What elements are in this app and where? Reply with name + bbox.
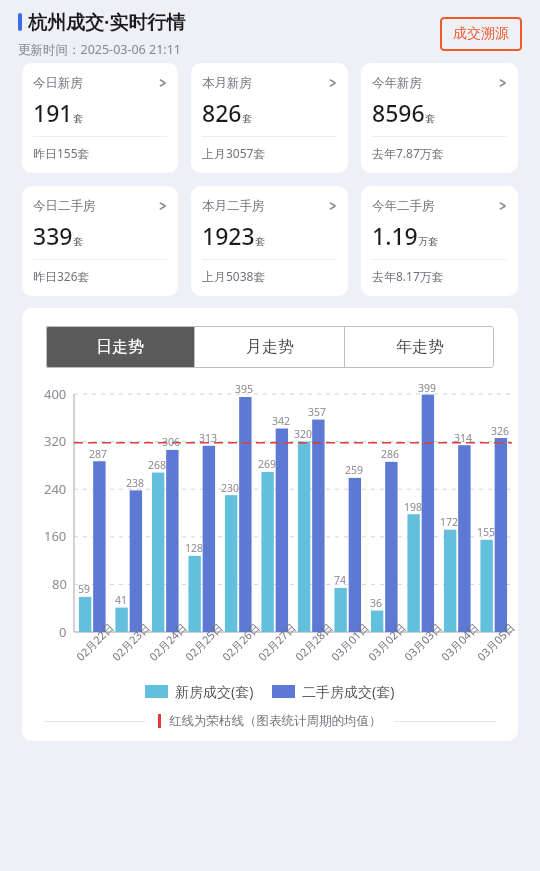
staticText: 41 xyxy=(115,593,128,607)
staticText: 新房成交(套) xyxy=(175,682,254,701)
staticText: 03月05日 xyxy=(474,619,518,664)
staticText: 59 xyxy=(78,582,91,596)
staticText: 269 xyxy=(258,457,277,471)
staticText: 313 xyxy=(199,431,218,445)
staticText: 155 xyxy=(477,525,496,539)
staticText: 259 xyxy=(345,463,364,477)
staticText: 230 xyxy=(221,481,240,495)
staticText: 本月二手房 xyxy=(202,198,265,214)
staticText: 套 xyxy=(73,112,83,125)
staticText: 03月04日 xyxy=(438,619,482,664)
staticText: 198 xyxy=(404,500,423,514)
staticText: 更新时间：2025-03-06 21:11 xyxy=(18,41,181,58)
staticText: 上月5038套 xyxy=(202,268,266,284)
staticText: 357 xyxy=(308,405,327,419)
staticText: 8596 xyxy=(372,97,425,128)
staticText: 上月3057套 xyxy=(202,145,266,161)
staticText: 02月27日 xyxy=(255,619,299,664)
staticText: 320 xyxy=(44,432,67,450)
staticText: 去年7.87万套 xyxy=(372,145,444,161)
staticText: 02月24日 xyxy=(146,619,190,664)
staticText: 399 xyxy=(418,381,437,395)
staticText: 0 xyxy=(59,623,67,641)
staticText: 1.19 xyxy=(372,220,418,251)
staticText: 今年二手房 xyxy=(372,198,435,214)
staticText: 二手房成交(套) xyxy=(302,682,395,701)
button[interactable]: 日走势 xyxy=(46,326,194,368)
button[interactable]: 本月新房 xyxy=(191,63,348,173)
staticText: 月走势 xyxy=(246,337,294,357)
staticText: 128 xyxy=(185,541,204,555)
staticText: 240 xyxy=(44,480,67,498)
staticText: 36 xyxy=(370,596,383,610)
staticText: 400 xyxy=(44,385,67,403)
staticText: 03月03日 xyxy=(401,619,445,664)
staticText: 286 xyxy=(381,447,400,461)
button[interactable]: 年走势 xyxy=(345,326,494,368)
staticText: 80 xyxy=(52,575,67,593)
staticText: 172 xyxy=(440,515,459,529)
button[interactable]: 成交溯源 xyxy=(440,17,522,51)
button[interactable]: 月走势 xyxy=(195,326,344,368)
staticText: 套 xyxy=(255,235,265,248)
staticText: 287 xyxy=(89,447,108,461)
staticText: 日走势 xyxy=(96,337,144,357)
staticText: 02月23日 xyxy=(109,619,153,664)
button[interactable]: 今日二手房 xyxy=(22,186,178,296)
staticText: 杭州成交·实时行情 xyxy=(28,9,186,35)
staticText: 套 xyxy=(73,235,83,248)
staticText: 万套 xyxy=(418,235,438,248)
staticText: 昨日326套 xyxy=(33,268,90,284)
button[interactable]: 今年二手房 xyxy=(361,186,518,296)
button[interactable]: 今年新房 xyxy=(361,63,518,173)
staticText: 03月01日 xyxy=(328,619,372,664)
staticText: 1923 xyxy=(202,220,255,251)
staticText: 74 xyxy=(334,573,347,587)
staticText: 342 xyxy=(272,414,291,428)
staticText: 02月28日 xyxy=(292,619,336,664)
staticText: 红线为荣枯线（图表统计周期的均值） xyxy=(169,713,382,729)
button[interactable]: 本月二手房 xyxy=(191,186,348,296)
staticText: 今日二手房 xyxy=(33,198,96,214)
staticText: 326 xyxy=(491,424,510,438)
staticText: 826 xyxy=(202,97,242,128)
staticText: 02月26日 xyxy=(219,619,263,664)
staticText: 238 xyxy=(126,476,145,490)
staticText: 本月新房 xyxy=(202,75,252,91)
staticText: 306 xyxy=(162,435,181,449)
staticText: 今日新房 xyxy=(33,75,83,91)
staticText: 320 xyxy=(294,427,313,441)
staticText: 03月02日 xyxy=(365,619,409,664)
staticText: 339 xyxy=(33,220,73,251)
staticText: 成交溯源 xyxy=(453,25,509,43)
staticText: 今年新房 xyxy=(372,75,422,91)
staticText: 套 xyxy=(425,112,435,125)
staticText: 02月22日 xyxy=(73,619,117,664)
staticText: 160 xyxy=(44,527,67,545)
staticText: 395 xyxy=(235,382,254,396)
staticText: 昨日155套 xyxy=(33,145,90,161)
staticText: 191 xyxy=(33,97,73,128)
staticText: 年走势 xyxy=(396,337,444,357)
staticText: 套 xyxy=(242,112,252,125)
staticText: 268 xyxy=(148,458,167,472)
button[interactable]: 今日新房 xyxy=(22,63,178,173)
staticText: 去年8.17万套 xyxy=(372,268,444,284)
staticText: 02月25日 xyxy=(182,619,226,664)
staticText: 314 xyxy=(454,431,473,445)
